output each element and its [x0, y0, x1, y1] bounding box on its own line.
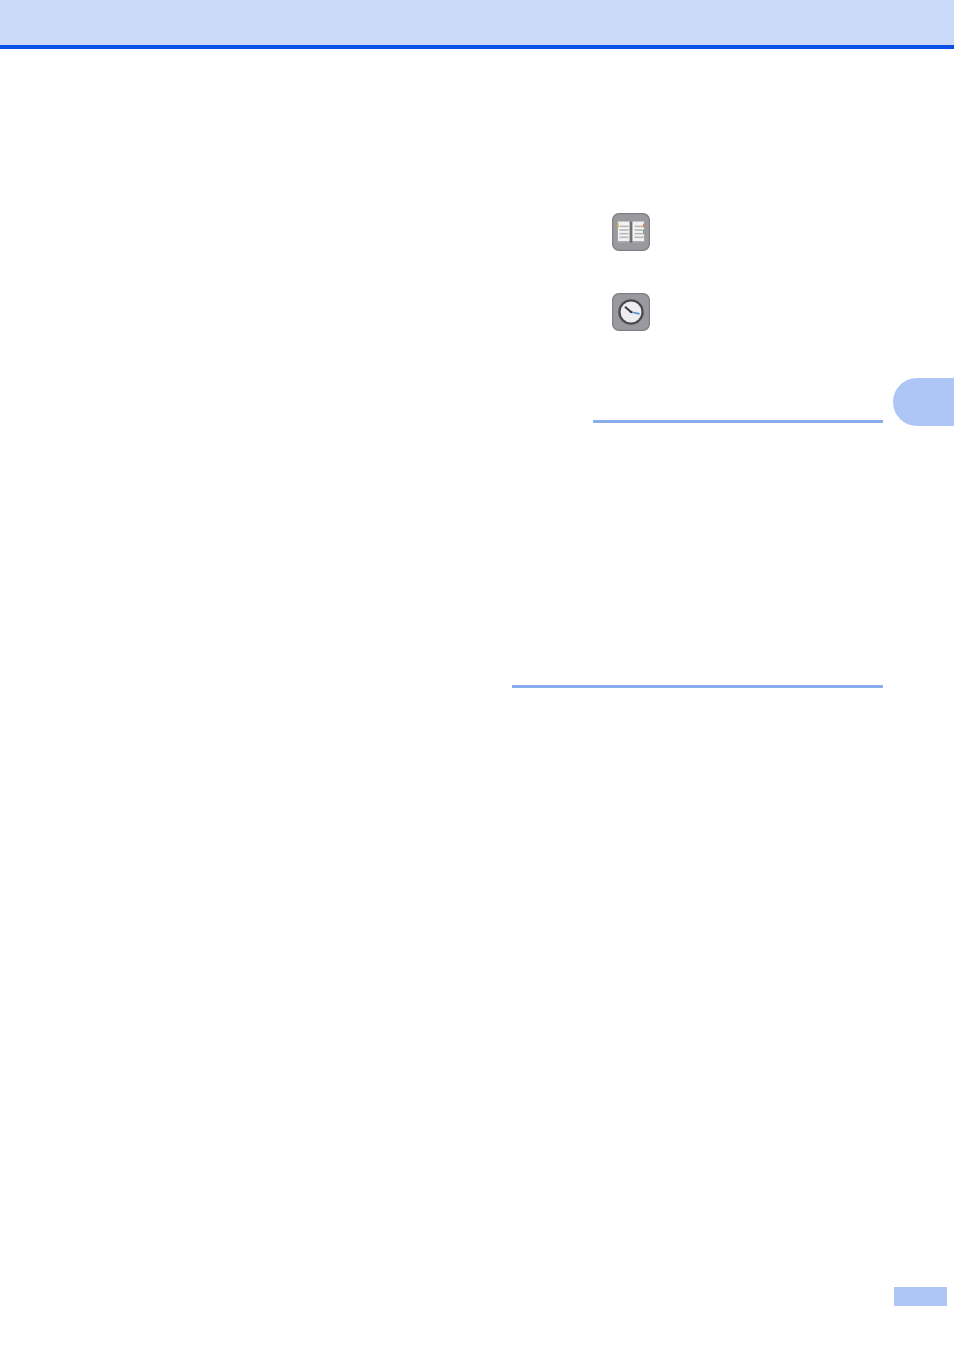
- button[interactable]: Clock: [612, 293, 650, 331]
- button[interactable]: Address Book: [612, 213, 650, 251]
